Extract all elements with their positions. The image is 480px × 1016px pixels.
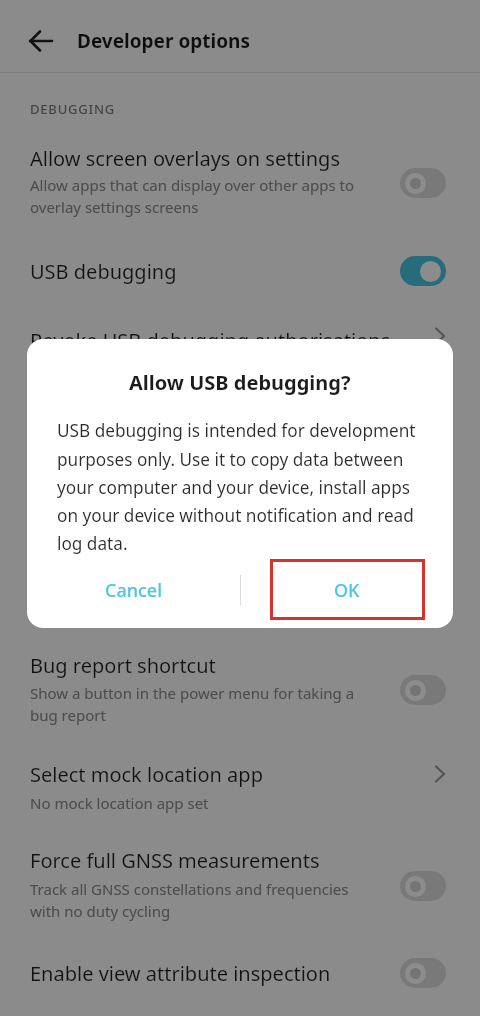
- staticText: USB debugging is intended for developmen…: [57, 419, 416, 555]
- button[interactable]: [400, 256, 446, 286]
- button[interactable]: [29, 29, 53, 53]
- button[interactable]: [400, 168, 446, 198]
- staticText: OK: [334, 578, 360, 603]
- button[interactable]: [0, 314, 480, 366]
- staticText: DEBUGGING: [30, 100, 116, 118]
- button[interactable]: [400, 871, 446, 901]
- staticText: Bug report shortcut: [30, 652, 216, 679]
- staticText: Select mock location app: [30, 761, 263, 788]
- button[interactable]: [0, 836, 480, 930]
- staticText: No mock location app set: [30, 793, 209, 813]
- staticText: Developer options: [77, 28, 250, 54]
- staticText: Cancel: [105, 578, 163, 603]
- staticText: Force full GNSS measurements: [30, 847, 320, 874]
- staticText: Allow screen overlays on settings: [30, 145, 340, 172]
- button[interactable]: OK: [240, 558, 453, 622]
- button[interactable]: [0, 134, 480, 226]
- staticText: Allow USB debugging?: [129, 369, 351, 396]
- staticText: Track all GNSS constellations and freque…: [30, 879, 349, 922]
- button[interactable]: [0, 946, 480, 1002]
- staticText: Show a button in the power menu for taki…: [30, 683, 355, 726]
- button[interactable]: [400, 675, 446, 705]
- button[interactable]: [0, 243, 480, 299]
- staticText: USB debugging: [30, 258, 177, 285]
- staticText: Enable view attribute inspection: [30, 960, 331, 987]
- staticText: Allow apps that can display over other a…: [30, 175, 354, 218]
- staticText: Revoke USB debugging authorisations: [30, 327, 391, 354]
- button[interactable]: Cancel: [27, 558, 240, 622]
- button[interactable]: [0, 640, 480, 734]
- button[interactable]: [0, 749, 480, 821]
- button[interactable]: [400, 958, 446, 988]
